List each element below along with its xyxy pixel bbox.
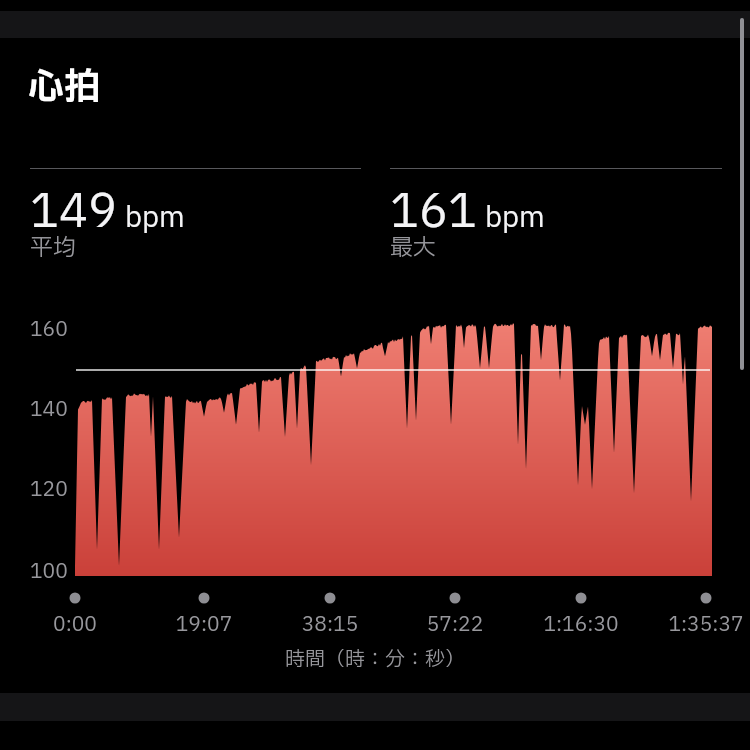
staticText: 149 xyxy=(30,178,117,247)
staticText: 38:15 xyxy=(270,610,390,640)
staticText: 19:07 xyxy=(144,610,264,640)
staticText: 最大 xyxy=(390,231,436,265)
staticText: 時間（時：分：秒） xyxy=(0,645,750,675)
staticText: bpm xyxy=(125,197,185,239)
staticText: 0:00 xyxy=(15,610,135,640)
button[interactable]: 149 xyxy=(30,178,185,247)
staticText: 100 xyxy=(30,557,68,587)
button[interactable]: 161 xyxy=(390,178,545,247)
staticText: 140 xyxy=(30,395,68,425)
staticText: 57:22 xyxy=(395,610,515,640)
button[interactable]: 心拍 xyxy=(28,61,101,115)
staticText: 160 xyxy=(30,315,68,345)
staticText: 1:35:37 xyxy=(646,610,750,640)
staticText: 1:16:30 xyxy=(521,610,641,640)
staticText: 161 xyxy=(390,178,477,247)
staticText: 平均 xyxy=(30,231,76,265)
staticText: 120 xyxy=(30,475,68,505)
staticText: bpm xyxy=(485,197,545,239)
